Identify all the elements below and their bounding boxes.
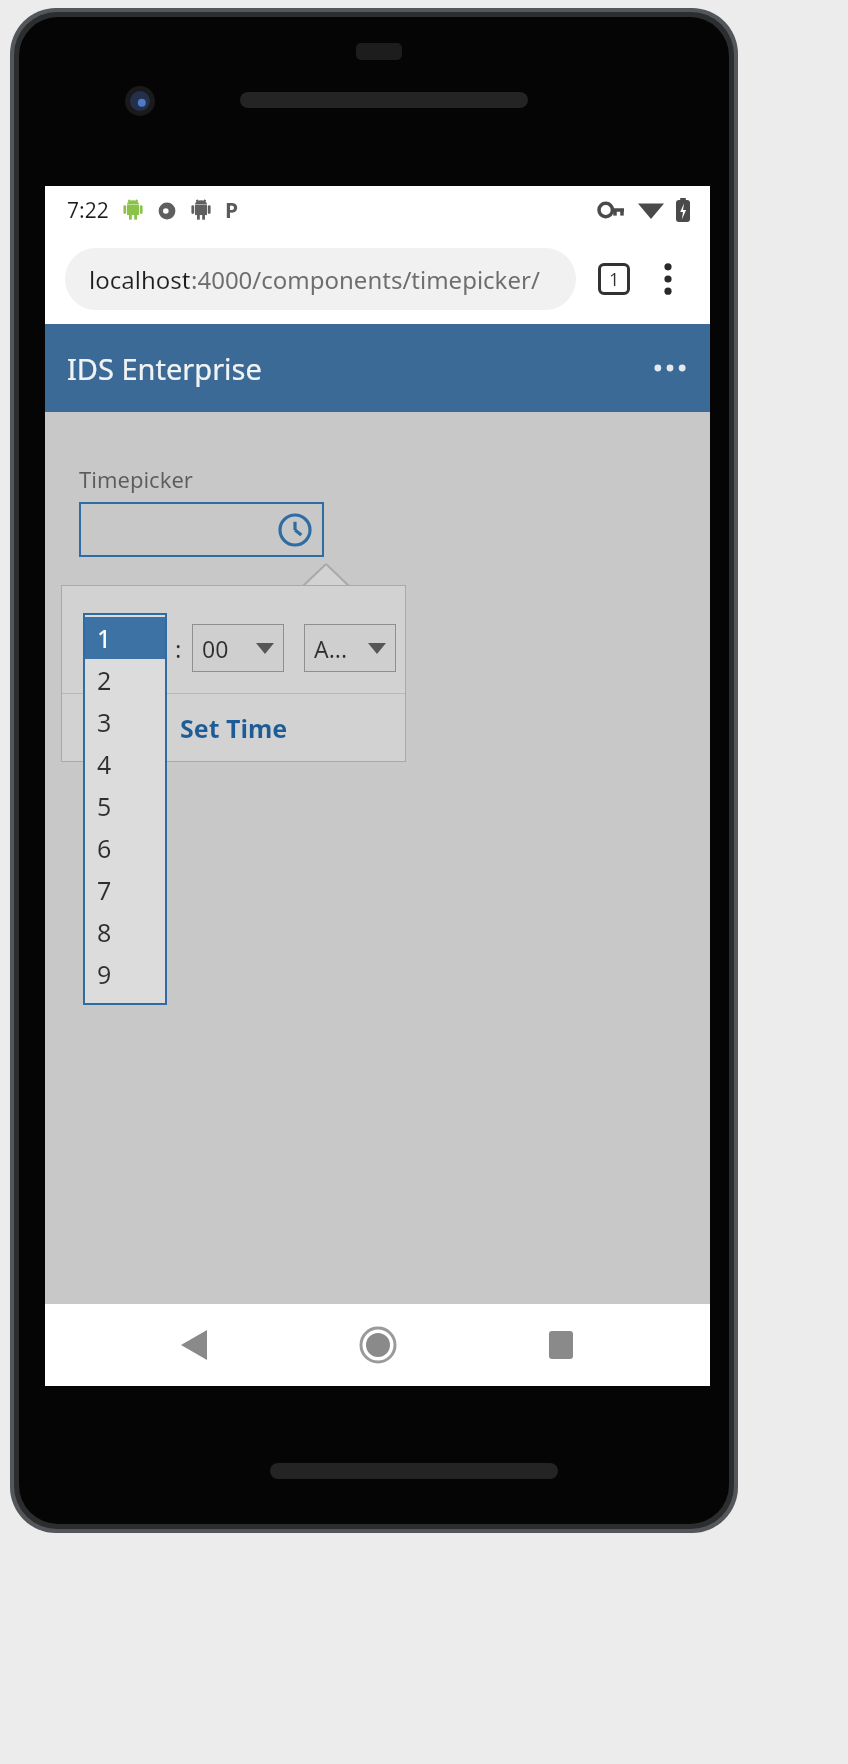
button[interactable]: Tabs: [592, 257, 636, 301]
button[interactable]: 8: [83, 911, 167, 953]
button[interactable]: Hours: [85, 624, 165, 672]
staticText: :: [175, 632, 182, 665]
staticText: 00: [202, 633, 229, 664]
button[interactable]: 7: [83, 869, 167, 911]
staticText: 7: [97, 873, 112, 907]
button[interactable]: Set Time: [61, 694, 406, 762]
staticText: 1: [609, 267, 620, 292]
staticText: 4: [97, 747, 112, 781]
staticText: 3: [97, 705, 112, 739]
staticText: 5: [97, 789, 112, 823]
button[interactable]: 1: [83, 617, 167, 659]
button[interactable]: 6: [83, 827, 167, 869]
button[interactable]: localhost: [65, 248, 576, 310]
button[interactable]: Back: [159, 1310, 229, 1380]
button[interactable]: 2: [83, 659, 167, 701]
staticText: 7:22: [67, 196, 109, 225]
button[interactable]: 4: [83, 743, 167, 785]
button[interactable]: Recents: [526, 1310, 596, 1380]
button[interactable]: Home: [343, 1310, 413, 1380]
staticText: :4000/components/timepicker/: [191, 263, 540, 296]
button[interactable]: More actions: [644, 342, 696, 394]
staticText: Timepicker: [79, 464, 193, 494]
button[interactable]: 9: [83, 953, 167, 995]
staticText: A...: [314, 633, 348, 664]
staticText: 8: [97, 915, 112, 949]
staticText: Set Time: [180, 711, 288, 745]
button[interactable]: A...: [304, 624, 396, 672]
staticText: IDS Enterprise: [67, 349, 262, 388]
button[interactable]: More options: [646, 257, 690, 301]
staticText: 6: [97, 831, 112, 865]
staticText: 9: [97, 957, 112, 991]
staticText: 2: [97, 663, 112, 697]
staticText: P: [225, 196, 239, 225]
button[interactable]: Time picker field: [79, 502, 324, 557]
button[interactable]: 3: [83, 701, 167, 743]
staticText: 1: [97, 621, 112, 655]
staticText: localhost: [89, 263, 191, 296]
button[interactable]: 00: [192, 624, 284, 672]
button[interactable]: 5: [83, 785, 167, 827]
